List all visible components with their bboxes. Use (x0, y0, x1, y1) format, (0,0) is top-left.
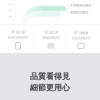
staticText: 不易變形與褪色 (70, 3, 91, 7)
staticText: 品質看得見 (30, 71, 70, 81)
staticText: 層層把關品質 (42, 36, 60, 40)
button[interactable]: 42 項檢測 (66, 31, 96, 48)
staticText: 從嚴把關標準 (72, 36, 90, 40)
staticText: 嚴謹的檢驗標準 (7, 35, 28, 39)
button[interactable]: 30 道工序 (36, 30, 66, 49)
staticText: 細節更用心 (30, 83, 70, 92)
staticText: 46 項工藝 (11, 30, 25, 34)
staticText: 42 項檢測 (74, 31, 88, 35)
button[interactable]: 46 項工藝 (3, 30, 33, 49)
staticText: 耐磨防刮處理 (70, 10, 88, 14)
staticText: 30 道工序 (44, 30, 58, 34)
